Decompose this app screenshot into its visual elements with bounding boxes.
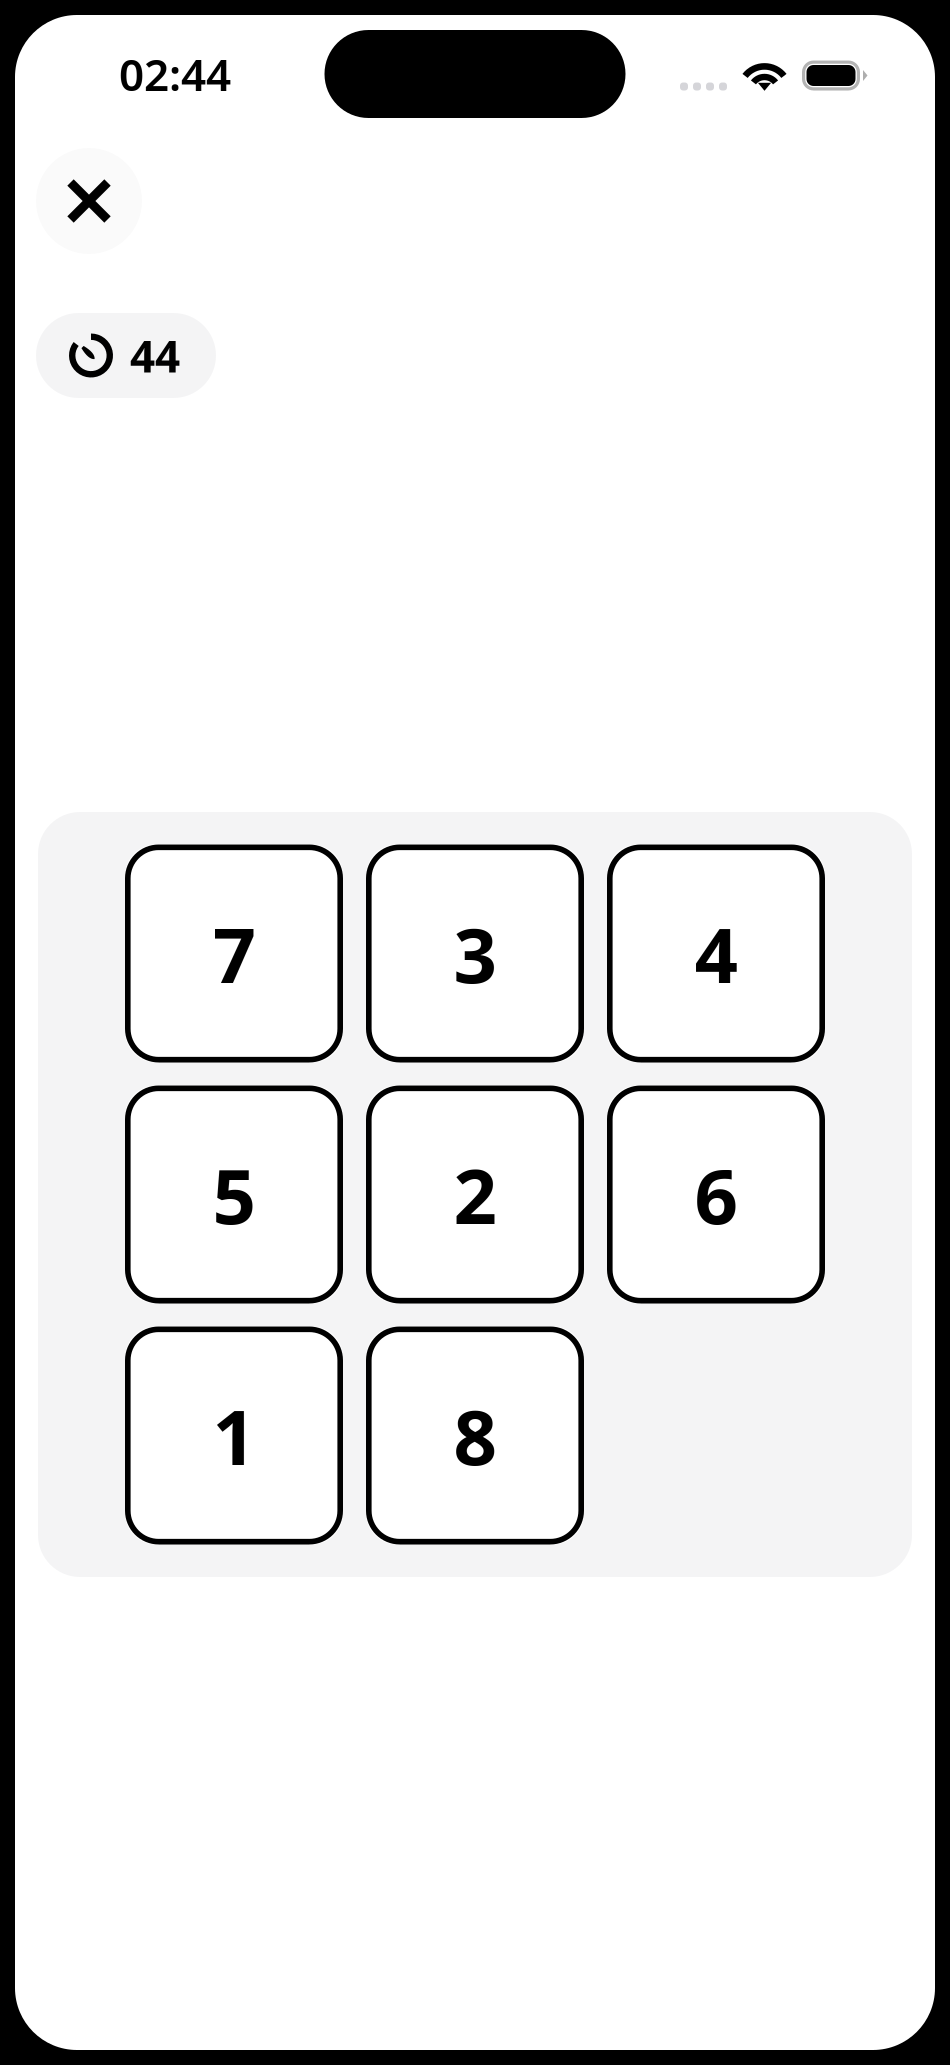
- button[interactable]: 8: [366, 1326, 584, 1544]
- button[interactable]: 7: [125, 844, 343, 1062]
- button[interactable]: 6: [607, 1085, 825, 1303]
- staticText: 7: [212, 903, 255, 1004]
- staticText: 8: [453, 1385, 496, 1486]
- button[interactable]: Timer 44: [36, 313, 216, 398]
- button[interactable]: 4: [607, 844, 825, 1062]
- button[interactable]: Close: [36, 148, 142, 254]
- staticText: 3: [453, 903, 496, 1004]
- staticText: 44: [130, 326, 180, 385]
- staticText: 4: [694, 903, 737, 1004]
- staticText: 1: [212, 1385, 255, 1486]
- staticText: 5: [212, 1144, 255, 1245]
- button[interactable]: 3: [366, 844, 584, 1062]
- staticText: 02:44: [119, 45, 231, 103]
- button[interactable]: 2: [366, 1085, 584, 1303]
- staticText: 6: [694, 1144, 737, 1245]
- button[interactable]: 5: [125, 1085, 343, 1303]
- button[interactable]: 1: [125, 1326, 343, 1544]
- staticText: 2: [453, 1144, 496, 1245]
